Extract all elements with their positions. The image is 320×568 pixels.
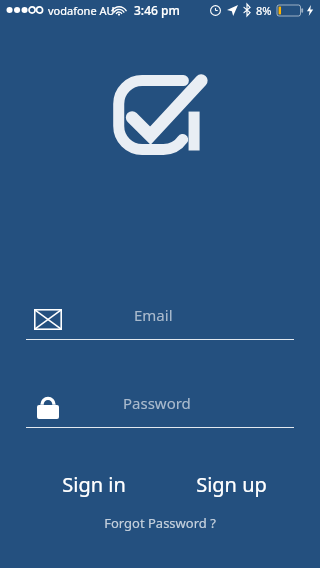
button[interactable]: Password — [26, 388, 294, 432]
staticText: Forgot Password ? — [104, 514, 216, 532]
button[interactable]: Forgot Password ? — [85, 510, 235, 536]
staticText: 3:46 pm — [134, 2, 180, 18]
staticText: Sign in — [62, 471, 126, 498]
other: Email — [34, 309, 62, 330]
staticText: Email — [134, 305, 173, 325]
button[interactable]: Email — [26, 300, 294, 344]
button[interactable]: Sign up — [181, 468, 281, 500]
staticText: Password — [123, 393, 191, 413]
staticText: Sign up — [196, 471, 267, 498]
staticText: 8% — [256, 3, 272, 18]
button[interactable]: Sign in — [44, 468, 144, 500]
staticText: vodafone AU — [48, 3, 115, 18]
other: Password — [37, 395, 59, 419]
